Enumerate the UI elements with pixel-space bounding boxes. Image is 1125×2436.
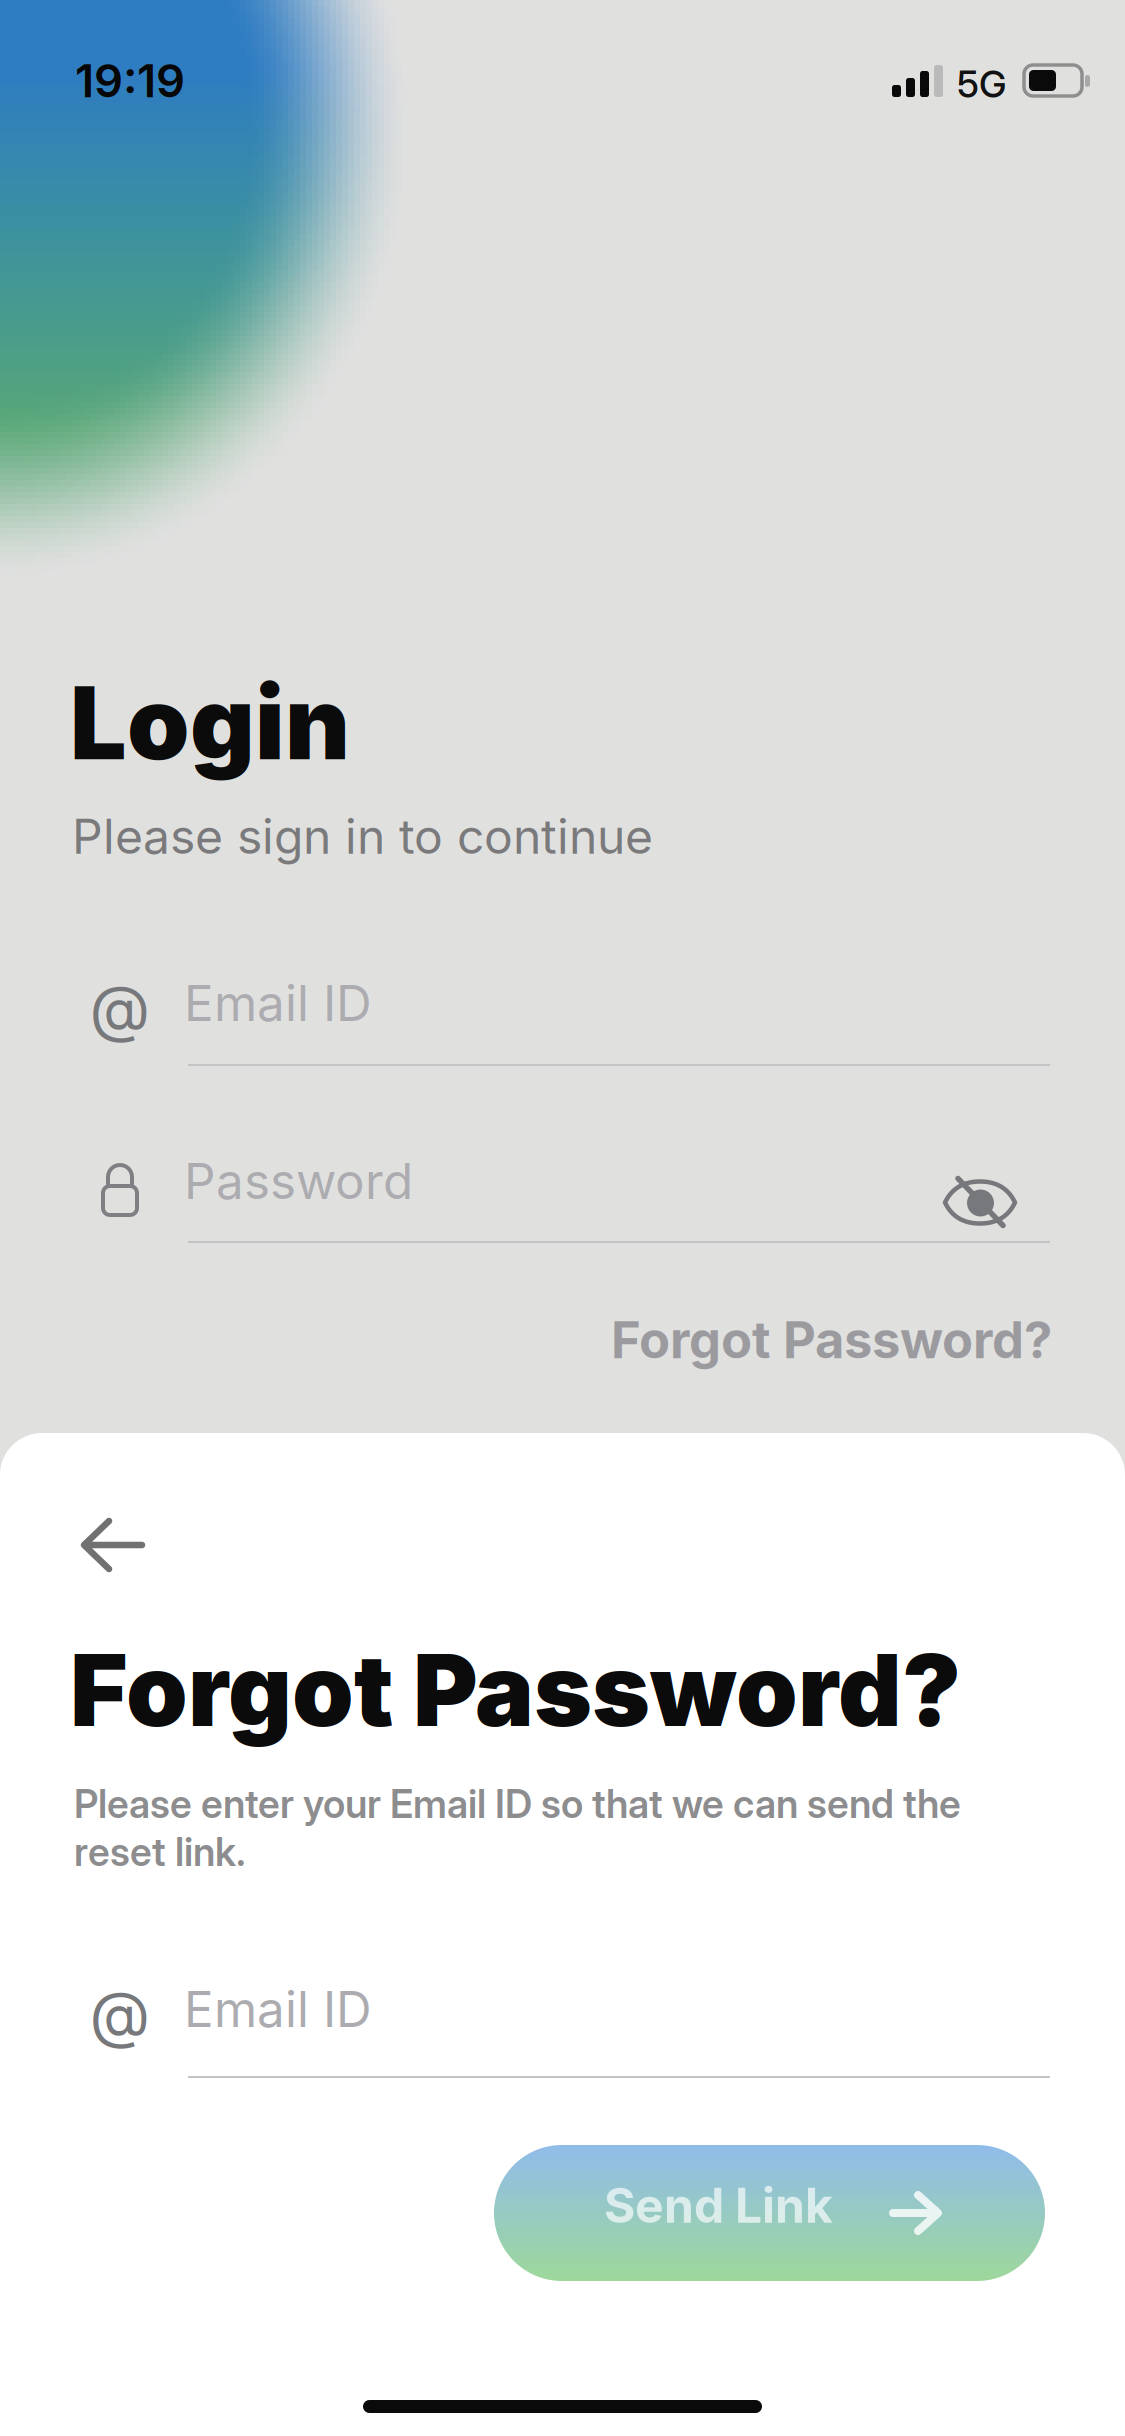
staticText: Email ID: [184, 1980, 372, 2038]
staticText: 5G: [957, 62, 1006, 106]
staticText: Forgot Password?: [611, 1310, 1052, 1370]
staticText: Login: [70, 664, 350, 782]
staticText: @: [89, 971, 150, 1045]
button[interactable]: Back: [80, 1517, 144, 1573]
staticText: Please sign in to continue: [72, 808, 653, 865]
staticText: @: [89, 1977, 150, 2051]
staticText: 19:19: [75, 54, 185, 107]
button[interactable]: Forgot Password?: [611, 1310, 1052, 1370]
staticText: Password: [184, 1152, 413, 1210]
button[interactable]: Send Link: [494, 2145, 1045, 2281]
staticText: Email ID: [184, 974, 372, 1032]
staticText: Please enter your Email ID so that we ca…: [74, 1781, 961, 1827]
button[interactable]: Show password: [943, 1177, 1017, 1227]
staticText: Forgot Password?: [70, 1632, 961, 1748]
staticText: Send Link: [604, 2177, 833, 2234]
staticText: reset link.: [74, 1829, 246, 1875]
